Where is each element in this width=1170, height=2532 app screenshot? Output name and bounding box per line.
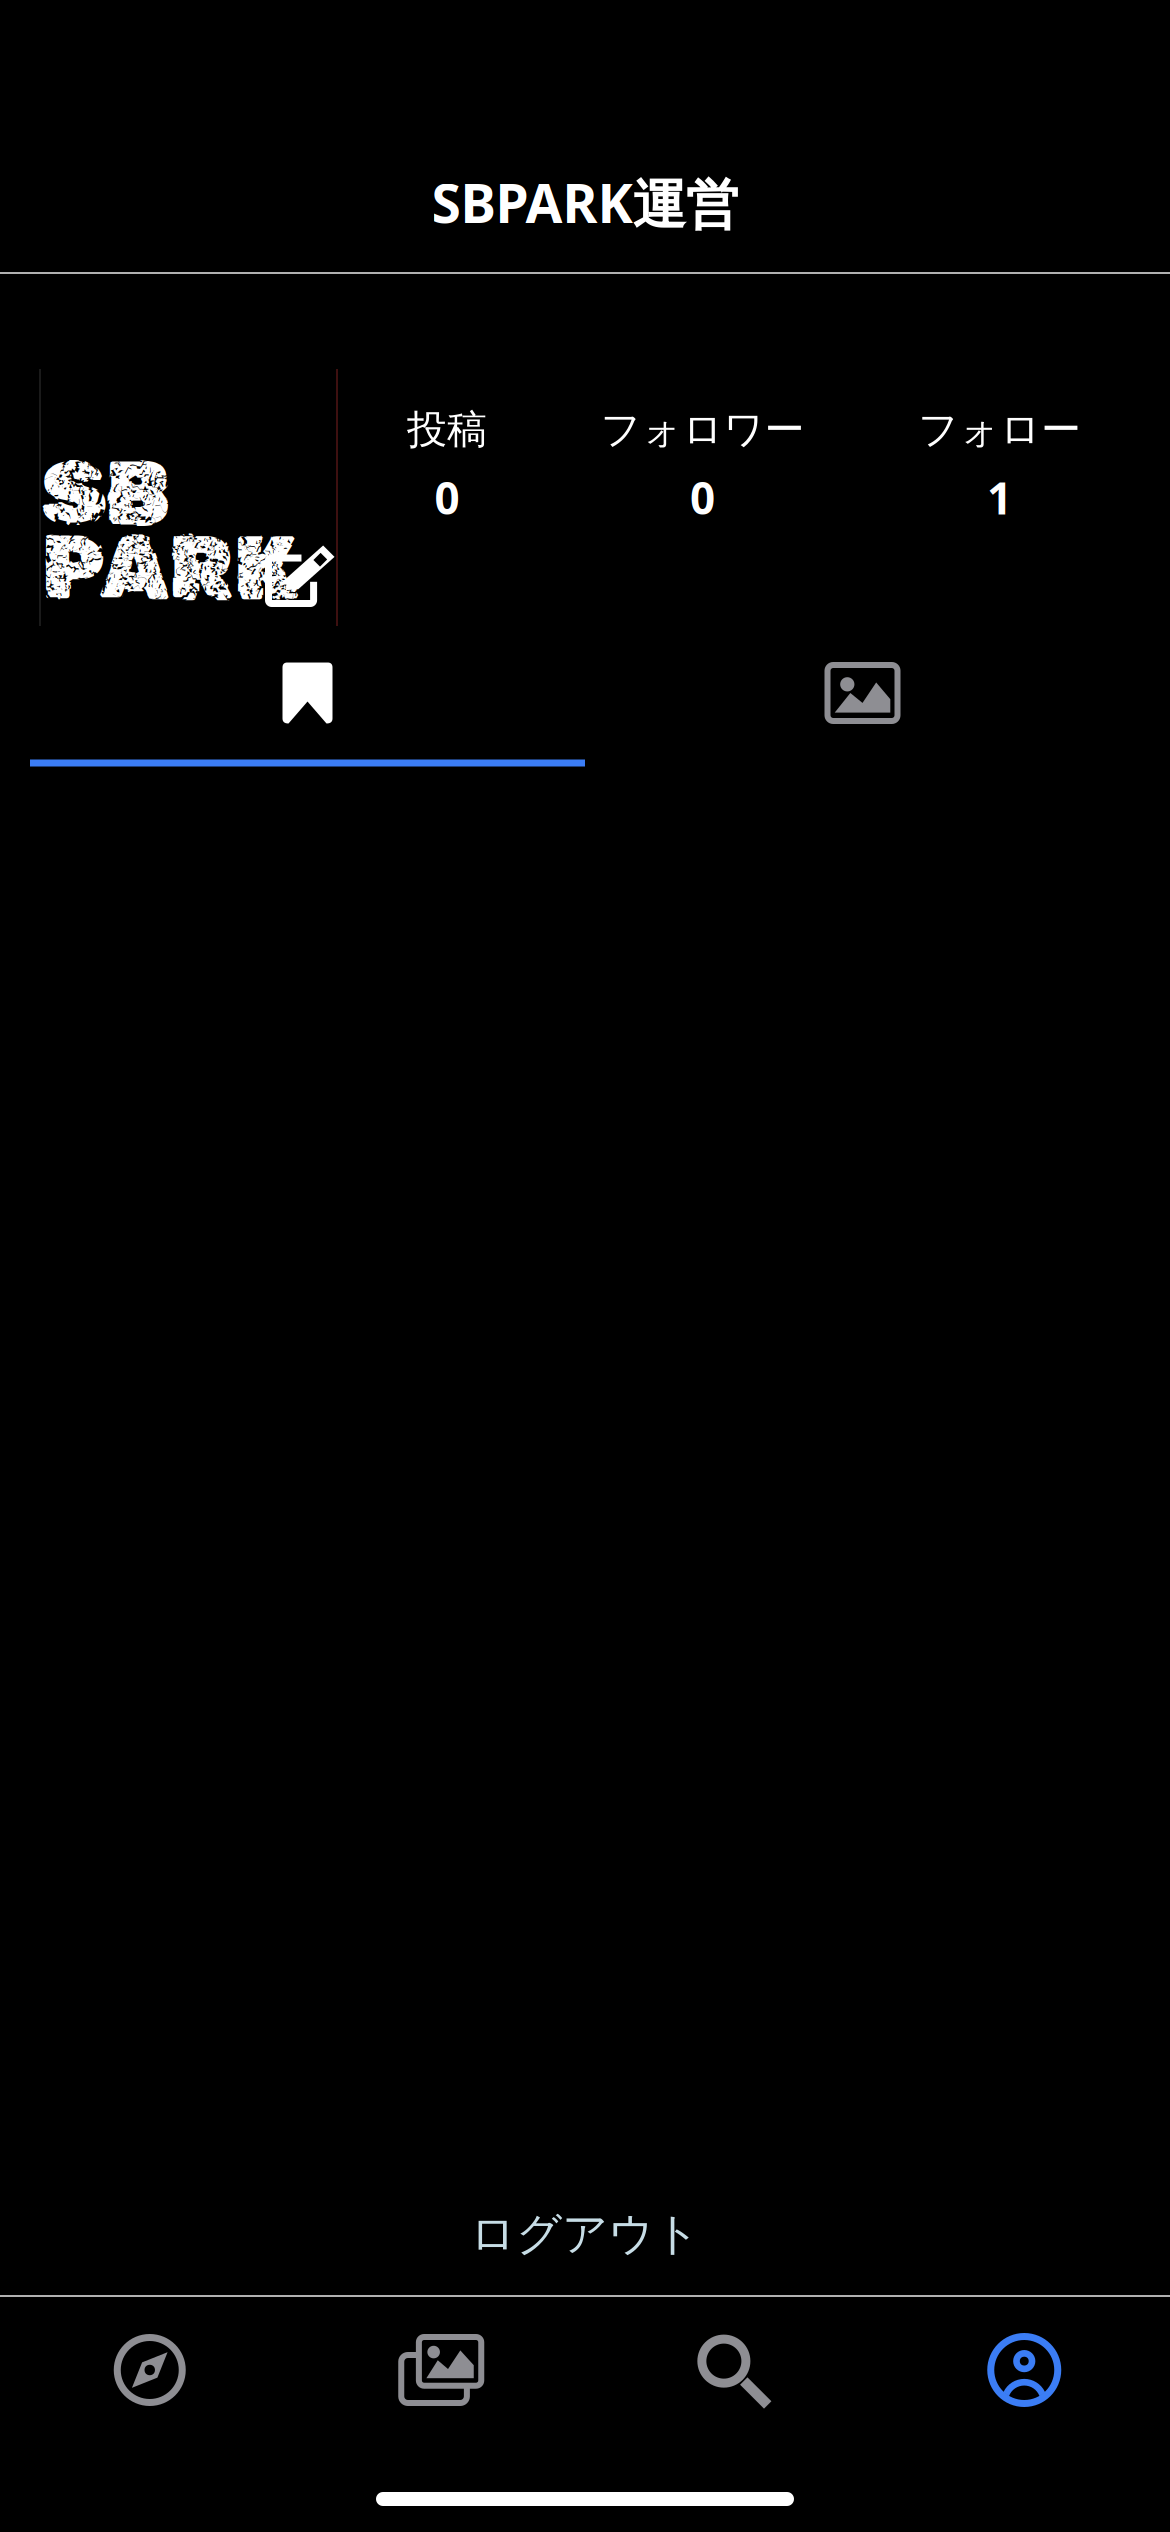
button[interactable]: Posts: [585, 662, 1140, 767]
button[interactable]: 投稿: [407, 405, 487, 527]
staticText: フォロー: [918, 405, 1081, 454]
button[interactable]: Search: [587, 2297, 878, 2443]
button[interactable]: Profile: [878, 2297, 1170, 2443]
staticText: SBPARK運営: [431, 167, 738, 238]
staticText: 0: [434, 468, 459, 526]
staticText: PARK: [41, 515, 298, 622]
button[interactable]: フォロワー: [600, 405, 804, 527]
button[interactable]: Photos: [295, 2297, 587, 2443]
button[interactable]: Edit profile photo: [39, 369, 338, 626]
staticText: 0: [690, 468, 715, 526]
staticText: 1: [987, 468, 1012, 526]
button[interactable]: フォロー: [918, 405, 1081, 527]
staticText: フォロワー: [600, 405, 804, 454]
staticText: SB: [41, 440, 171, 547]
staticText: ログアウト: [470, 2206, 700, 2262]
button[interactable]: Saved posts: [30, 662, 585, 766]
staticText: 投稿: [407, 405, 487, 454]
button[interactable]: ログアウト: [0, 2194, 1170, 2274]
button[interactable]: Explore: [4, 2297, 295, 2443]
